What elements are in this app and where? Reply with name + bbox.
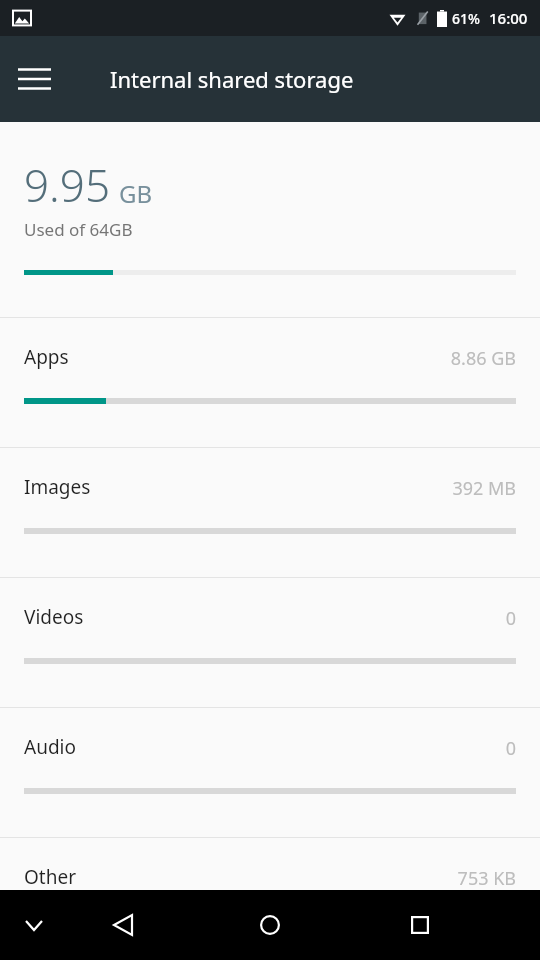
button[interactable]: Home	[248, 903, 292, 947]
staticText: 753 KB	[457, 866, 516, 890]
staticText: Apps	[24, 344, 69, 370]
staticText: Images	[24, 474, 91, 500]
button[interactable]: Audio	[0, 708, 540, 837]
button[interactable]: Videos	[0, 578, 540, 707]
staticText: Internal shared storage	[110, 64, 354, 94]
button[interactable]: Other	[0, 838, 540, 890]
staticText: Videos	[24, 604, 84, 630]
staticText: Used of 64GB	[24, 218, 133, 241]
staticText: GB	[119, 177, 153, 210]
button[interactable]: Hide	[12, 903, 56, 947]
button[interactable]: Back	[101, 903, 145, 947]
staticText: 16:00	[489, 8, 528, 28]
button[interactable]: Apps	[0, 318, 540, 447]
staticText: 61%	[452, 9, 480, 28]
staticText: 9.95	[24, 155, 111, 215]
button[interactable]: 9.95	[0, 122, 540, 317]
button[interactable]: Images	[0, 448, 540, 577]
staticText: Audio	[24, 734, 76, 760]
button[interactable]: Open navigation menu	[10, 55, 58, 103]
staticText: 392 MB	[452, 476, 516, 501]
button[interactable]: Recent apps	[398, 903, 442, 947]
staticText: 8.86 GB	[450, 346, 516, 371]
staticText: 0	[505, 736, 516, 761]
staticText: Other	[24, 864, 77, 890]
staticText: 0	[505, 606, 516, 631]
